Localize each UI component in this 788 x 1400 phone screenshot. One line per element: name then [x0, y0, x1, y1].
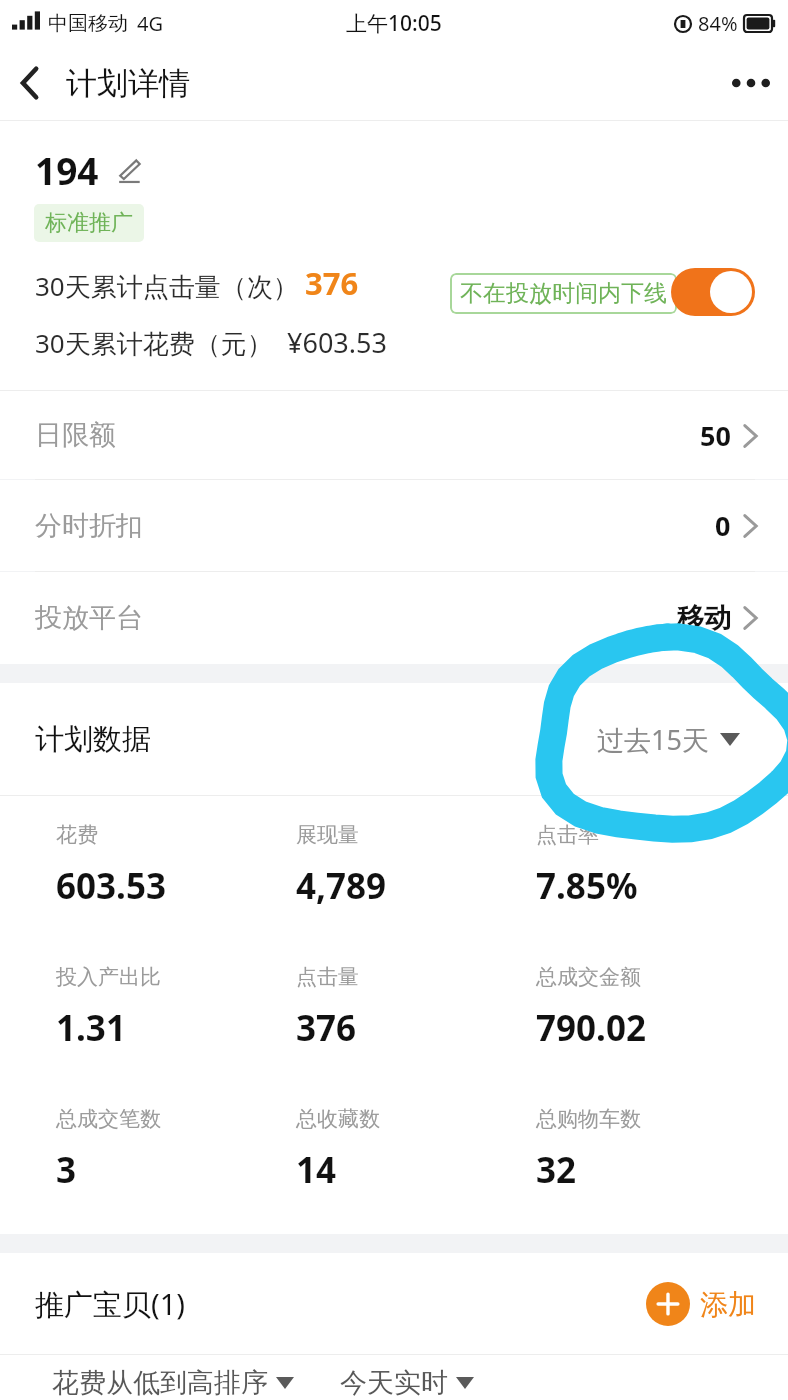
button[interactable]: Back — [0, 53, 60, 113]
button[interactable]: 花费从低到高排序 — [52, 1366, 294, 1400]
staticText: 投放平台 — [35, 601, 143, 635]
button[interactable]: 过去15天 — [597, 721, 740, 758]
staticText: 标准推广 — [45, 209, 133, 237]
staticText: 上午10:05 — [346, 9, 442, 38]
staticText: 点击率 — [536, 822, 599, 848]
staticText: 展现量 — [296, 822, 359, 848]
staticText: 总购物车数 — [536, 1106, 641, 1132]
button[interactable]: 日限额 — [0, 391, 788, 479]
button[interactable]: 不在投放时间内下线 — [450, 273, 677, 314]
staticText: 点击量 — [296, 964, 359, 990]
button[interactable]: More options — [714, 52, 788, 114]
button[interactable]: 投放平台 — [0, 572, 788, 664]
staticText: 194 — [35, 145, 99, 195]
staticText: 30天累计点击量（次） — [35, 268, 299, 304]
staticText: 总成交金额 — [536, 964, 641, 990]
staticText: 推广宝贝(1) — [35, 1284, 185, 1324]
button[interactable]: Edit name — [113, 155, 143, 185]
button[interactable]: 标准推广 — [34, 204, 144, 242]
staticText: 添加 — [700, 1287, 756, 1322]
staticText: 不在投放时间内下线 — [460, 279, 667, 308]
staticText: 4,789 — [296, 862, 387, 910]
staticText: 过去15天 — [597, 721, 709, 758]
staticText: 50 — [700, 417, 731, 454]
staticText: 花费从低到高排序 — [52, 1366, 268, 1400]
staticText: 1.31 — [56, 1004, 126, 1052]
staticText: 分时折扣 — [35, 509, 143, 543]
staticText: 移动 — [677, 601, 731, 635]
staticText: 30天累计花费（元） — [35, 325, 273, 361]
staticText: ¥603.53 — [287, 324, 387, 361]
staticText: 84% — [698, 10, 738, 37]
staticText: 32 — [536, 1146, 577, 1194]
button[interactable]: 添加 — [646, 1282, 756, 1326]
button[interactable]: 今天实时 — [340, 1366, 474, 1400]
staticText: 计划详情 — [66, 64, 190, 103]
staticText: 投入产出比 — [56, 964, 161, 990]
staticText: 总收藏数 — [296, 1106, 380, 1132]
button[interactable]: 分时折扣 — [0, 480, 788, 571]
staticText: 总成交笔数 — [56, 1106, 161, 1132]
staticText: 日限额 — [35, 418, 116, 452]
staticText: 376 — [305, 262, 359, 304]
staticText: 中国移动 — [48, 11, 128, 36]
staticText: 603.53 — [56, 862, 166, 910]
staticText: 376 — [296, 1004, 357, 1052]
staticText: 0 — [715, 507, 731, 544]
staticText: 今天实时 — [340, 1366, 448, 1400]
staticText: 3 — [56, 1146, 77, 1194]
staticText: 14 — [296, 1146, 337, 1194]
staticText: 计划数据 — [35, 721, 151, 758]
button[interactable]: Campaign on/off toggle — [671, 268, 755, 316]
staticText: 7.85% — [536, 862, 638, 910]
staticText: 4G — [137, 10, 163, 37]
staticText: 790.02 — [536, 1004, 646, 1052]
staticText: 花费 — [56, 822, 98, 848]
